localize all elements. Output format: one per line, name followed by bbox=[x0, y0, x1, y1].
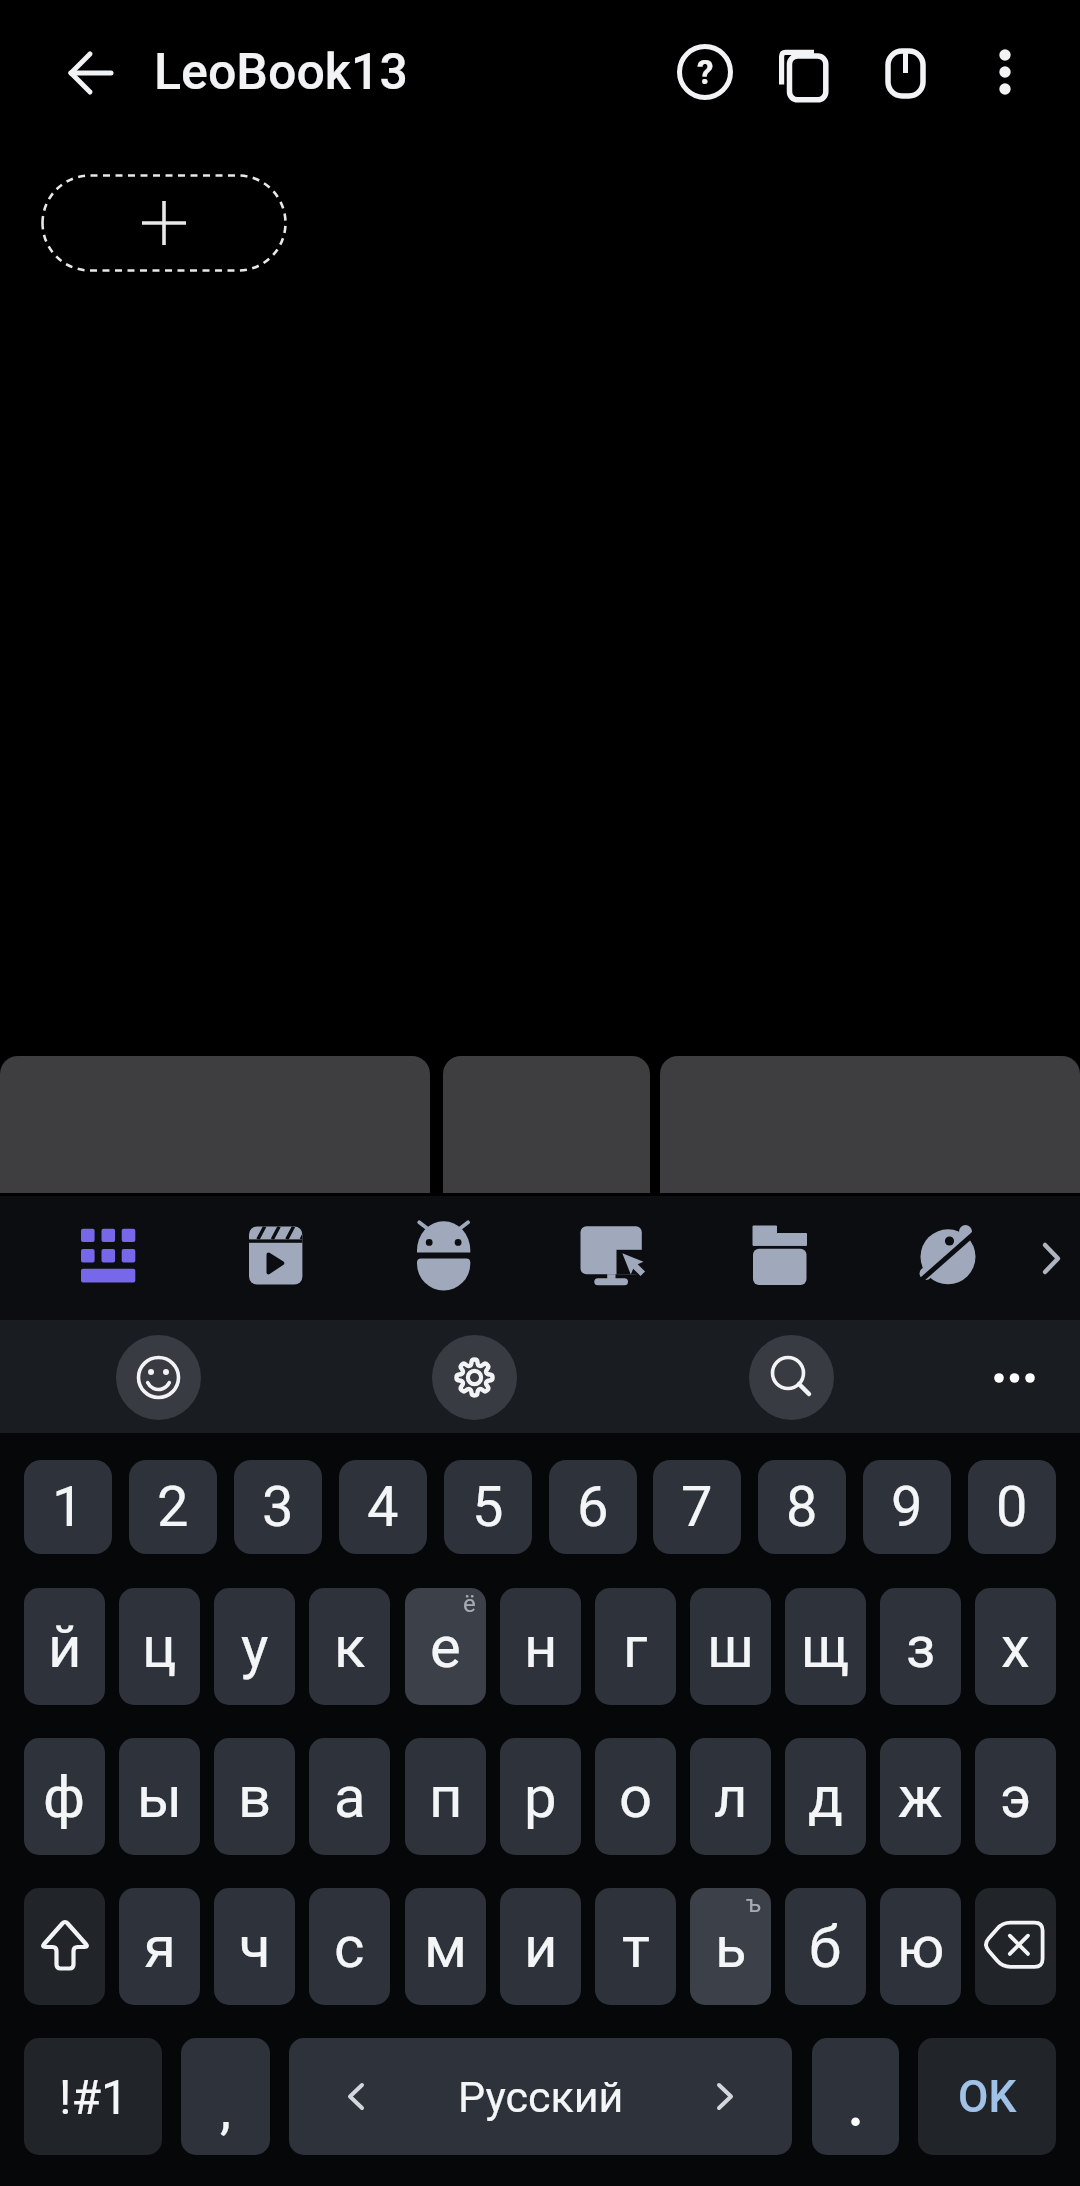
button[interactable]: , bbox=[181, 2038, 270, 2155]
button[interactable]: 0 bbox=[968, 1460, 1056, 1554]
button[interactable] bbox=[41, 174, 287, 272]
button[interactable] bbox=[224, 1205, 328, 1309]
button[interactable] bbox=[116, 1335, 201, 1420]
button[interactable] bbox=[769, 40, 833, 104]
button[interactable]: н bbox=[500, 1588, 581, 1705]
button[interactable] bbox=[728, 1205, 832, 1309]
button[interactable]: 4 bbox=[339, 1460, 427, 1554]
button[interactable]: й bbox=[24, 1588, 105, 1705]
button[interactable]: п bbox=[405, 1738, 486, 1855]
button[interactable] bbox=[749, 1335, 834, 1420]
button[interactable] bbox=[660, 1056, 1080, 1193]
staticText: 7 bbox=[681, 1474, 713, 1540]
staticText: х bbox=[1001, 1613, 1030, 1681]
button[interactable]: у bbox=[214, 1588, 295, 1705]
staticText: 1 bbox=[52, 1474, 84, 1540]
staticText: р bbox=[524, 1763, 557, 1831]
button[interactable] bbox=[24, 1888, 105, 2005]
staticText: т bbox=[622, 1913, 650, 1981]
button[interactable]: а bbox=[309, 1738, 390, 1855]
button[interactable]: щ bbox=[785, 1588, 866, 1705]
button[interactable]: к bbox=[309, 1588, 390, 1705]
button[interactable]: Русский bbox=[289, 2038, 792, 2155]
button[interactable]: ч bbox=[214, 1888, 295, 2005]
button[interactable]: 7 bbox=[653, 1460, 741, 1554]
button[interactable]: 2 bbox=[129, 1460, 217, 1554]
staticText: , bbox=[220, 2076, 232, 2142]
button[interactable]: я bbox=[119, 1888, 200, 2005]
staticText: й bbox=[48, 1613, 82, 1681]
staticText: !#1 bbox=[59, 2069, 128, 2125]
button[interactable] bbox=[443, 1056, 650, 1193]
button[interactable] bbox=[392, 1205, 496, 1309]
button[interactable] bbox=[56, 1205, 160, 1309]
button[interactable] bbox=[560, 1205, 664, 1309]
button[interactable]: д bbox=[785, 1738, 866, 1855]
staticText: LeoBook13 bbox=[154, 43, 408, 102]
button[interactable] bbox=[981, 38, 1029, 106]
button[interactable]: 5 bbox=[444, 1460, 532, 1554]
button[interactable]: с bbox=[309, 1888, 390, 2005]
button[interactable] bbox=[979, 1338, 1051, 1418]
button[interactable]: ш bbox=[690, 1588, 771, 1705]
button[interactable]: 9 bbox=[863, 1460, 951, 1554]
staticText: п bbox=[429, 1763, 463, 1831]
button[interactable]: !#1 bbox=[24, 2038, 162, 2155]
button[interactable]: и bbox=[500, 1888, 581, 2005]
button[interactable]: г bbox=[595, 1588, 676, 1705]
button[interactable]: 3 bbox=[234, 1460, 322, 1554]
button[interactable]: в bbox=[214, 1738, 295, 1855]
button[interactable]: ф bbox=[24, 1738, 105, 1855]
button[interactable]: ж bbox=[880, 1738, 961, 1855]
button[interactable]: ? bbox=[673, 40, 737, 104]
button[interactable]: ц bbox=[119, 1588, 200, 1705]
staticText: 3 bbox=[262, 1474, 294, 1540]
staticText: г bbox=[623, 1613, 648, 1681]
staticText: о bbox=[619, 1763, 653, 1831]
staticText: э bbox=[1000, 1763, 1032, 1831]
button[interactable] bbox=[0, 1056, 430, 1193]
staticText: и bbox=[524, 1913, 558, 1981]
staticText: ъ bbox=[746, 1890, 761, 1918]
button[interactable] bbox=[812, 2038, 899, 2155]
button[interactable]: р bbox=[500, 1738, 581, 1855]
staticText: д bbox=[808, 1763, 844, 1831]
staticText: в bbox=[238, 1763, 272, 1831]
button[interactable] bbox=[1032, 1226, 1076, 1290]
staticText: ц bbox=[142, 1613, 177, 1681]
button[interactable]: э bbox=[975, 1738, 1056, 1855]
button[interactable] bbox=[975, 1888, 1056, 2005]
button[interactable]: OK bbox=[918, 2038, 1056, 2155]
staticText: я bbox=[144, 1913, 176, 1981]
staticText: ы bbox=[137, 1763, 183, 1831]
staticText: з bbox=[906, 1613, 936, 1681]
button[interactable]: 8 bbox=[758, 1460, 846, 1554]
staticText: ю bbox=[897, 1913, 945, 1981]
staticText: 5 bbox=[472, 1474, 504, 1540]
staticText: н bbox=[524, 1613, 558, 1681]
staticText: б bbox=[809, 1913, 842, 1981]
staticText: 4 bbox=[367, 1474, 399, 1540]
staticText: с bbox=[334, 1913, 365, 1981]
staticText: 6 bbox=[577, 1474, 609, 1540]
button[interactable]: з bbox=[880, 1588, 961, 1705]
button[interactable]: е bbox=[405, 1588, 486, 1705]
staticText: у bbox=[241, 1613, 269, 1681]
button[interactable]: ю bbox=[880, 1888, 961, 2005]
button[interactable]: 1 bbox=[24, 1460, 112, 1554]
button[interactable]: о bbox=[595, 1738, 676, 1855]
button[interactable]: х bbox=[975, 1588, 1056, 1705]
button[interactable] bbox=[876, 40, 936, 100]
button[interactable]: м bbox=[405, 1888, 486, 2005]
button[interactable] bbox=[58, 40, 124, 106]
button[interactable]: 6 bbox=[549, 1460, 637, 1554]
button[interactable] bbox=[896, 1205, 1000, 1309]
staticText: а bbox=[334, 1763, 366, 1831]
staticText: ё bbox=[463, 1590, 476, 1618]
button[interactable]: ь bbox=[690, 1888, 771, 2005]
button[interactable]: т bbox=[595, 1888, 676, 2005]
button[interactable] bbox=[432, 1335, 517, 1420]
button[interactable]: л bbox=[690, 1738, 771, 1855]
button[interactable]: ы bbox=[119, 1738, 200, 1855]
button[interactable]: б bbox=[785, 1888, 866, 2005]
